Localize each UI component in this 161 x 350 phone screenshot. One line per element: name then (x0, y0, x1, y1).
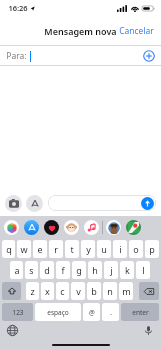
button[interactable]: enter (121, 303, 159, 321)
button[interactable]: App (126, 220, 141, 235)
staticText: Para: (6, 50, 27, 62)
staticText: @ (89, 308, 95, 317)
button[interactable]: d (40, 261, 54, 279)
button[interactable]: n (103, 282, 117, 300)
button[interactable]: j (104, 261, 118, 279)
button[interactable]: App (44, 220, 59, 235)
staticText: Mensagem nova (44, 25, 117, 37)
staticText: w (20, 243, 28, 255)
staticText: t (70, 243, 74, 255)
button[interactable]: m (119, 282, 133, 300)
button[interactable]: a (10, 261, 23, 279)
button[interactable]: s (25, 261, 38, 279)
button[interactable]: q (2, 240, 15, 258)
staticText: Cancelar (119, 25, 154, 37)
staticText: h (92, 264, 98, 276)
button[interactable]: c (56, 282, 69, 300)
button[interactable]: w (17, 240, 31, 258)
button[interactable]: y (81, 240, 95, 258)
staticText: enter (132, 308, 149, 317)
staticText: r (54, 243, 58, 255)
staticText: c (60, 285, 65, 297)
button[interactable]: u (97, 240, 111, 258)
button[interactable]: App (4, 220, 19, 235)
staticText: b (91, 285, 97, 297)
button[interactable]: l (136, 261, 150, 279)
button[interactable]: Câmera (5, 195, 22, 212)
staticText: y (86, 243, 91, 255)
staticText: d (44, 264, 50, 276)
button[interactable]: App (24, 220, 39, 235)
button[interactable]: v (71, 282, 85, 300)
button[interactable]: r (49, 240, 63, 258)
button[interactable]: z (26, 282, 39, 300)
staticText: v (76, 285, 81, 297)
button[interactable]: . (102, 303, 119, 321)
staticText: z (30, 285, 35, 297)
staticText: f (61, 264, 65, 276)
staticText: . (110, 308, 112, 317)
button[interactable]: App (64, 220, 79, 235)
button[interactable]: espaço (35, 303, 81, 321)
button[interactable]: Apps (26, 195, 43, 212)
button[interactable]: k (120, 261, 134, 279)
staticText: 123 (12, 308, 24, 317)
button[interactable]: o (129, 240, 143, 258)
button[interactable]: Enviar (48, 195, 156, 211)
button[interactable]: b (87, 282, 101, 300)
button[interactable]: p (145, 240, 159, 258)
staticText: l (142, 264, 145, 276)
staticText: s (29, 264, 34, 276)
button[interactable]: Enviar (141, 197, 154, 210)
staticText: x (45, 285, 50, 297)
button[interactable]: f (56, 261, 70, 279)
staticText: p (149, 243, 155, 255)
staticText: e (37, 243, 43, 255)
button[interactable]: Apagar (139, 282, 159, 300)
staticText: u (101, 243, 107, 255)
button[interactable]: @ (83, 303, 100, 321)
button[interactable]: x (41, 282, 54, 300)
button[interactable]: Cancelar (112, 20, 161, 42)
button[interactable]: Mudar idioma (7, 325, 18, 336)
button[interactable]: i (113, 240, 127, 258)
button[interactable]: Ditado (143, 325, 154, 336)
staticText: i (119, 243, 122, 255)
staticText: k (125, 264, 130, 276)
staticText: j (110, 264, 113, 276)
staticText: g (76, 264, 82, 276)
button[interactable]: t (65, 240, 79, 258)
button[interactable]: g (72, 261, 86, 279)
button[interactable]: 123 (2, 303, 33, 321)
staticText: n (107, 285, 113, 297)
button[interactable]: Adicionar contato (143, 50, 155, 62)
staticText: 16:26 (8, 3, 28, 13)
button[interactable]: h (88, 261, 102, 279)
button[interactable]: App (84, 220, 99, 235)
button[interactable]: App (106, 220, 121, 235)
staticText: a (14, 264, 20, 276)
staticText: m (122, 285, 131, 297)
button[interactable]: e (33, 240, 47, 258)
button[interactable]: Para: (0, 46, 161, 66)
staticText: espaço (47, 308, 69, 317)
staticText: q (6, 243, 12, 255)
button[interactable]: Shift (2, 282, 21, 300)
staticText: o (133, 243, 139, 255)
